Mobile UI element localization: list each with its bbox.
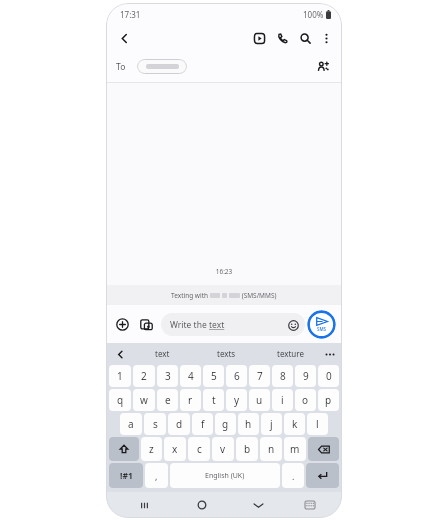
button[interactable]: Add recipient [313, 57, 333, 77]
button[interactable]: 1 [109, 365, 131, 387]
button[interactable]: q [109, 389, 131, 411]
staticText: 6 [234, 369, 240, 383]
button[interactable]: Stickers [136, 314, 156, 334]
button[interactable]: More options [317, 29, 335, 47]
button[interactable]: o [295, 389, 316, 411]
staticText: Texting with [171, 291, 210, 300]
button[interactable]: Back [114, 28, 134, 48]
button[interactable]: Previous suggestions [112, 346, 128, 362]
button[interactable]: h [238, 413, 259, 435]
button[interactable]: n [260, 437, 282, 461]
button[interactable]: i [272, 389, 293, 411]
staticText: f [201, 417, 205, 431]
staticText: w [140, 393, 148, 407]
button[interactable]: 3 [157, 365, 178, 387]
staticText: j [270, 417, 273, 431]
button[interactable]: 5 [203, 365, 224, 387]
staticText: (SMS/MMS) [240, 291, 277, 300]
staticText: m [290, 442, 300, 456]
staticText: texts [217, 348, 236, 359]
button[interactable]: g [215, 413, 236, 435]
button[interactable]: Call [272, 28, 292, 48]
staticText: i [281, 393, 284, 407]
staticText: 5 [211, 369, 217, 383]
button[interactable]: Send SMS [307, 310, 336, 339]
staticText: r [188, 393, 193, 407]
button[interactable]: Shift [109, 437, 139, 461]
button[interactable]: s [144, 413, 166, 435]
staticText: h [245, 417, 252, 431]
button[interactable]: Search [295, 28, 315, 48]
staticText: t [212, 393, 216, 407]
button[interactable]: a [120, 413, 142, 435]
staticText: l [316, 417, 319, 431]
button[interactable]: m [284, 437, 306, 461]
button[interactable]: . [282, 463, 304, 488]
button[interactable]: Hide keyboard [230, 492, 287, 518]
staticText: q [117, 393, 124, 407]
staticText: , [155, 470, 158, 482]
button[interactable]: texts [194, 343, 258, 364]
button[interactable]: 9 [295, 365, 316, 387]
button[interactable]: Backspace [308, 437, 339, 461]
staticText: g [222, 417, 229, 431]
button[interactable]: 8 [272, 365, 293, 387]
button[interactable]: f [192, 413, 213, 435]
staticText: To [116, 61, 126, 73]
staticText: 4 [188, 369, 194, 383]
staticText: 16:23 [106, 267, 342, 276]
button[interactable]: !#1 [109, 463, 143, 488]
button[interactable]: Switch keyboard [287, 492, 332, 518]
button[interactable]: Video call [249, 28, 269, 48]
button[interactable]: 6 [226, 365, 247, 387]
staticText: 0 [326, 369, 332, 383]
staticText: text [155, 348, 170, 359]
staticText: z [149, 442, 154, 456]
button[interactable]: More suggestions [322, 346, 338, 362]
button[interactable]: text [130, 343, 194, 364]
button[interactable]: Recents [116, 492, 173, 518]
staticText: 2 [141, 369, 147, 383]
button[interactable]: r [180, 389, 201, 411]
staticText: e [165, 393, 171, 407]
button[interactable]: 7 [249, 365, 270, 387]
button[interactable]: 4 [180, 365, 201, 387]
staticText: . [292, 470, 295, 482]
staticText: 1 [117, 369, 123, 383]
staticText: 3 [165, 369, 171, 383]
button[interactable]: English (UK) [170, 463, 280, 488]
button[interactable]: l [307, 413, 328, 435]
button[interactable]: 0 [318, 365, 339, 387]
staticText: 9 [303, 369, 309, 383]
button[interactable]: p [318, 389, 339, 411]
button[interactable]: texture [258, 343, 322, 364]
button[interactable]: j [261, 413, 282, 435]
button[interactable]: 2 [133, 365, 155, 387]
staticText: text [209, 319, 225, 331]
button[interactable]: Add attachment [112, 314, 132, 334]
button[interactable]: b [236, 437, 258, 461]
staticText: Write the [170, 319, 209, 331]
staticText: English (UK) [205, 471, 245, 481]
button[interactable]: Write the [161, 313, 305, 336]
staticText: d [176, 417, 183, 431]
button[interactable]: w [133, 389, 155, 411]
staticText: p [325, 393, 332, 407]
staticText: SMS [317, 326, 327, 332]
button[interactable]: c [188, 437, 210, 461]
button[interactable]: k [284, 413, 305, 435]
button[interactable]: z [141, 437, 162, 461]
button[interactable] [137, 59, 187, 74]
button[interactable]: d [168, 413, 190, 435]
button[interactable]: Enter [306, 463, 339, 488]
button[interactable]: v [212, 437, 234, 461]
button[interactable]: y [226, 389, 247, 411]
button[interactable]: t [203, 389, 224, 411]
staticText: 100% [303, 9, 324, 20]
button[interactable]: u [249, 389, 270, 411]
button[interactable]: Home [173, 492, 230, 518]
staticText: 7 [257, 369, 263, 383]
button[interactable]: x [164, 437, 186, 461]
button[interactable]: e [157, 389, 178, 411]
button[interactable]: , [145, 463, 168, 488]
